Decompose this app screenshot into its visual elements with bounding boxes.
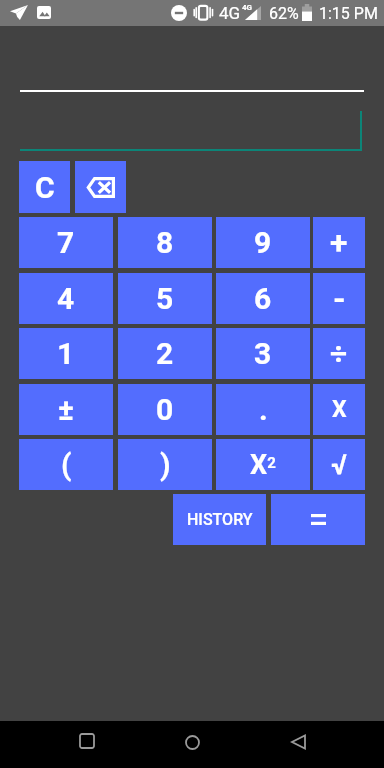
staticText: 0 <box>156 392 174 427</box>
staticText: ) <box>160 447 171 482</box>
button[interactable]: 4 <box>19 273 113 324</box>
staticText: ( <box>61 447 72 482</box>
button[interactable]: 8 <box>118 217 212 268</box>
button[interactable]: 1 <box>19 328 113 379</box>
button[interactable]: 6 <box>216 273 310 324</box>
button[interactable]: 3 <box>216 328 310 379</box>
staticText: X2 <box>250 449 276 481</box>
staticText: . <box>259 392 268 427</box>
button[interactable]: . <box>216 384 310 435</box>
staticText: C <box>35 170 55 205</box>
button[interactable]: 2 <box>118 328 212 379</box>
staticText: 1:15 PM <box>319 4 378 23</box>
button[interactable]: 7 <box>19 217 113 268</box>
button[interactable]: ) <box>118 439 212 490</box>
button[interactable]: - <box>313 273 365 324</box>
staticText: + <box>330 224 348 262</box>
button[interactable]: Recent apps <box>80 734 94 748</box>
button[interactable]: X <box>313 384 365 435</box>
button[interactable]: ÷ <box>313 328 365 379</box>
staticText: ± <box>58 392 75 427</box>
staticText: √ <box>331 448 347 481</box>
button[interactable]: HISTORY <box>173 494 266 545</box>
staticText: 3 <box>254 336 272 371</box>
staticText: 4G <box>242 3 253 12</box>
staticText: 1 <box>57 336 75 371</box>
staticText: - <box>333 280 346 318</box>
staticText: 62% <box>269 4 299 23</box>
button[interactable] <box>271 494 365 545</box>
staticText: 5 <box>156 281 174 316</box>
staticText: HISTORY <box>187 510 253 529</box>
button[interactable]: Back <box>291 734 306 750</box>
button[interactable]: √ <box>313 439 365 490</box>
button[interactable]: 5 <box>118 273 212 324</box>
staticText: 8 <box>156 225 174 260</box>
button[interactable]: ± <box>19 384 113 435</box>
staticText: ÷ <box>330 336 348 371</box>
button[interactable]: + <box>313 217 365 268</box>
staticText: 7 <box>57 225 75 260</box>
button[interactable]: 9 <box>216 217 310 268</box>
staticText: 4G <box>219 3 241 23</box>
staticText: 6 <box>254 281 272 316</box>
staticText: X <box>332 396 347 423</box>
button[interactable]: Backspace <box>75 161 126 213</box>
staticText: 9 <box>254 225 272 260</box>
button[interactable]: ( <box>19 439 113 490</box>
button[interactable]: X2 <box>216 439 310 490</box>
button[interactable]: 0 <box>118 384 212 435</box>
button[interactable]: Home <box>185 735 200 750</box>
staticText: 2 <box>156 336 174 371</box>
button[interactable]: C <box>19 161 70 213</box>
staticText: 4 <box>57 281 75 316</box>
